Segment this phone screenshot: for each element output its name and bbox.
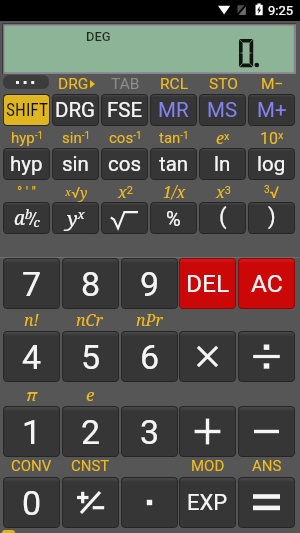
- button[interactable]: 4: [3, 331, 60, 382]
- button[interactable]: 0: [3, 477, 60, 528]
- button[interactable]: MS: [199, 94, 246, 126]
- staticText: x3: [216, 181, 231, 203]
- staticText: 10x: [260, 129, 284, 148]
- staticText: DEG: [86, 29, 111, 44]
- staticText: %: [166, 207, 181, 230]
- staticText: hyp: [10, 152, 43, 176]
- staticText: log: [257, 152, 286, 176]
- staticText: π: [26, 383, 37, 406]
- button[interactable]: M+: [248, 94, 295, 126]
- staticText: 1: [22, 412, 42, 452]
- button[interactable]: Decimal point: [121, 477, 178, 528]
- staticText: CONV: [11, 457, 52, 475]
- staticText: tan: [159, 152, 189, 176]
- staticText: MR: [158, 98, 189, 122]
- staticText: 3√: [264, 183, 280, 202]
- staticText: SHIFT: [6, 100, 48, 121]
- staticText: sin-1: [62, 129, 91, 147]
- staticText: tan-1: [159, 129, 189, 147]
- staticText: 9:25: [268, 3, 294, 18]
- staticText: cos-1: [109, 129, 142, 147]
- staticText: n!: [24, 309, 39, 331]
- button[interactable]: Square root: [101, 202, 148, 234]
- staticText: 9: [140, 264, 160, 304]
- button[interactable]: cos: [101, 148, 148, 180]
- button[interactable]: (: [199, 202, 246, 234]
- staticText: TAB: [111, 75, 140, 93]
- button[interactable]: DEL: [179, 258, 236, 309]
- staticText: ab⁄c: [14, 205, 40, 231]
- button[interactable]: Minus: [238, 406, 295, 457]
- staticText: (: [219, 204, 227, 230]
- staticText: cos: [108, 152, 142, 176]
- button[interactable]: 9: [121, 258, 178, 309]
- staticText: 5: [81, 337, 101, 377]
- button[interactable]: Plus: [179, 406, 236, 457]
- staticText: e: [86, 383, 95, 406]
- button[interactable]: log: [248, 148, 295, 180]
- staticText: CNST: [71, 457, 110, 475]
- staticText: EXP: [187, 490, 228, 516]
- button[interactable]: ab⁄c: [3, 202, 50, 234]
- staticText: 4: [22, 337, 42, 377]
- staticText: yx: [67, 205, 85, 232]
- staticText: x2: [118, 181, 133, 203]
- button[interactable]: Equals: [238, 477, 295, 528]
- staticText: 3: [140, 412, 160, 452]
- button[interactable]: ): [248, 202, 295, 234]
- button[interactable]: AC: [238, 258, 295, 309]
- button[interactable]: 6: [121, 331, 178, 382]
- staticText: ° ′ ″: [17, 184, 37, 200]
- button[interactable]: SHIFT: [3, 94, 50, 126]
- button[interactable]: tan: [150, 148, 197, 180]
- staticText: DRG: [55, 98, 96, 122]
- staticText: 8: [81, 264, 101, 304]
- staticText: FSE: [107, 98, 143, 122]
- button[interactable]: Divide: [238, 331, 295, 382]
- staticText: ex: [216, 127, 230, 149]
- button[interactable]: ln: [199, 148, 246, 180]
- staticText: 0: [22, 483, 42, 523]
- staticText: 6: [140, 337, 160, 377]
- button[interactable]: Plus minus sign: [62, 477, 119, 528]
- staticText: 7: [22, 264, 42, 304]
- staticText: 2: [81, 412, 101, 452]
- staticText: STO: [209, 75, 238, 93]
- button[interactable]: FSE: [101, 94, 148, 126]
- button[interactable]: EXP: [179, 477, 236, 528]
- button[interactable]: 5: [62, 331, 119, 382]
- staticText: DRG: [58, 75, 89, 93]
- button[interactable]: MR: [150, 94, 197, 126]
- staticText: ln: [214, 152, 231, 176]
- staticText: hyp-1: [11, 129, 44, 147]
- staticText: M−: [261, 75, 284, 93]
- button[interactable]: 2: [62, 406, 119, 457]
- button[interactable]: 1: [3, 406, 60, 457]
- button[interactable]: sin: [52, 148, 99, 180]
- staticText: x√y: [65, 183, 88, 202]
- button[interactable]: 8: [62, 258, 119, 309]
- staticText: nCr: [76, 309, 104, 331]
- staticText: MOD: [191, 457, 225, 475]
- button[interactable]: More options: [3, 75, 49, 89]
- staticText: AC: [251, 269, 283, 298]
- button[interactable]: Multiply: [179, 331, 236, 382]
- staticText: 1/x: [163, 181, 186, 203]
- button[interactable]: 7: [3, 258, 60, 309]
- button[interactable]: hyp: [3, 148, 50, 180]
- button[interactable]: 3: [121, 406, 178, 457]
- staticText: DEL: [186, 269, 230, 298]
- staticText: nPr: [136, 309, 163, 331]
- button[interactable]: DRG: [52, 94, 99, 126]
- button[interactable]: yx: [52, 202, 99, 234]
- staticText: M+: [257, 98, 287, 122]
- staticText: ): [268, 204, 276, 230]
- staticText: RCL: [160, 75, 188, 93]
- staticText: sin: [62, 152, 89, 176]
- button[interactable]: %: [150, 202, 197, 234]
- staticText: MS: [207, 98, 238, 122]
- staticText: ANS: [252, 457, 282, 475]
